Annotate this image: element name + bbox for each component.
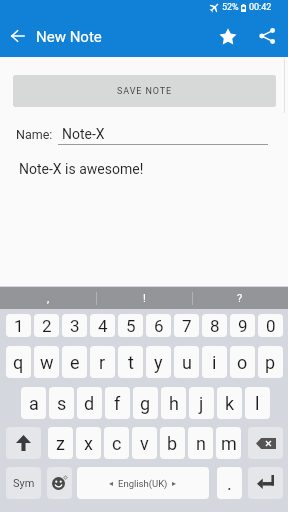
staticText: x — [84, 433, 93, 454]
button[interactable]: . — [217, 467, 242, 499]
staticText: l — [255, 393, 260, 414]
staticText: English(UK) — [118, 478, 168, 489]
button[interactable]: Backspace — [248, 427, 283, 459]
button[interactable]: 9 — [230, 314, 255, 337]
staticText: 00:42 — [249, 2, 272, 13]
staticText: Sym — [13, 477, 35, 490]
staticText: 4 — [98, 316, 108, 336]
button[interactable]: c — [104, 427, 129, 459]
button[interactable]: e — [62, 346, 87, 378]
staticText: 8 — [210, 316, 220, 336]
button[interactable]: ? — [192, 287, 288, 309]
staticText: ? — [237, 292, 243, 305]
button[interactable]: b — [160, 427, 185, 459]
staticText: 9 — [238, 316, 248, 336]
button[interactable]: 2 — [34, 314, 59, 337]
staticText: b — [167, 433, 178, 454]
staticText: f — [114, 393, 121, 414]
button[interactable]: Enter — [248, 467, 283, 499]
staticText: 6 — [154, 316, 164, 336]
staticText: u — [182, 352, 192, 373]
staticText: z — [56, 433, 65, 454]
button[interactable]: k — [217, 387, 242, 419]
button[interactable]: Sym — [6, 467, 41, 499]
button[interactable]: v — [132, 427, 157, 459]
button[interactable]: 8 — [202, 314, 227, 337]
staticText: t — [128, 352, 134, 373]
staticText: s — [57, 393, 67, 414]
button[interactable]: 1 — [6, 314, 31, 337]
button[interactable]: Back — [2, 21, 32, 51]
button[interactable]: 3 — [62, 314, 87, 337]
staticText: Name: — [16, 127, 53, 142]
button[interactable]: h — [161, 387, 186, 419]
staticText: j — [199, 393, 204, 414]
staticText: ◂ — [109, 479, 114, 488]
button[interactable]: 0 — [258, 314, 283, 337]
staticText: p — [265, 352, 276, 373]
staticText: 2 — [42, 316, 52, 336]
staticText: ! — [143, 292, 146, 305]
button[interactable]: d — [77, 387, 102, 419]
button[interactable]: p — [258, 346, 283, 378]
staticText: d — [84, 393, 95, 414]
button[interactable]: j — [189, 387, 214, 419]
staticText: ▸ — [172, 479, 177, 488]
staticText: c — [112, 433, 122, 454]
staticText: h — [169, 393, 179, 414]
button[interactable]: ! — [96, 287, 192, 309]
button[interactable]: l — [245, 387, 270, 419]
button[interactable]: 5 — [118, 314, 143, 337]
button[interactable]: u — [174, 346, 199, 378]
button[interactable]: r — [90, 346, 115, 378]
button[interactable]: z — [48, 427, 73, 459]
staticText: o — [237, 352, 248, 373]
staticText: g — [140, 393, 151, 414]
staticText: Note-X — [62, 126, 105, 142]
staticText: 7 — [182, 316, 192, 336]
staticText: a — [29, 393, 39, 414]
staticText: 3 — [70, 316, 80, 336]
button[interactable]: Emoji — [47, 467, 72, 499]
staticText: , — [47, 292, 50, 305]
button[interactable]: x — [76, 427, 101, 459]
staticText: 5 — [126, 316, 136, 336]
button[interactable]: q — [6, 346, 31, 378]
staticText: SAVE NOTE — [117, 86, 172, 97]
staticText: y — [154, 352, 163, 373]
button[interactable]: i — [202, 346, 227, 378]
staticText: 0 — [266, 316, 276, 336]
button[interactable]: y — [146, 346, 171, 378]
staticText: w — [40, 352, 54, 373]
button[interactable]: 6 — [146, 314, 171, 337]
button[interactable]: g — [133, 387, 158, 419]
button[interactable]: Favorite — [212, 20, 244, 52]
staticText: n — [196, 433, 206, 454]
button[interactable]: a — [21, 387, 46, 419]
staticText: k — [225, 393, 235, 414]
button[interactable]: 7 — [174, 314, 199, 337]
staticText: 1 — [14, 316, 24, 336]
staticText: New Note — [36, 28, 102, 46]
staticText: i — [212, 352, 217, 373]
button[interactable]: s — [49, 387, 74, 419]
button[interactable]: m — [216, 427, 241, 459]
button[interactable]: t — [118, 346, 143, 378]
button[interactable]: ◂ — [77, 467, 209, 499]
button[interactable]: w — [34, 346, 59, 378]
staticText: m — [221, 433, 237, 454]
button[interactable]: n — [188, 427, 213, 459]
button[interactable]: o — [230, 346, 255, 378]
staticText: r — [99, 352, 106, 373]
staticText: q — [13, 352, 24, 373]
button[interactable]: Share — [251, 20, 283, 52]
staticText: 52% — [222, 2, 239, 13]
button[interactable]: , — [0, 287, 96, 309]
button[interactable]: Shift — [6, 427, 41, 459]
staticText: e — [70, 352, 80, 373]
button[interactable]: SAVE NOTE — [13, 75, 276, 107]
button[interactable]: 4 — [90, 314, 115, 337]
button[interactable]: f — [105, 387, 130, 419]
staticText: v — [140, 433, 149, 454]
staticText: Note-X is awesome! — [19, 161, 144, 177]
